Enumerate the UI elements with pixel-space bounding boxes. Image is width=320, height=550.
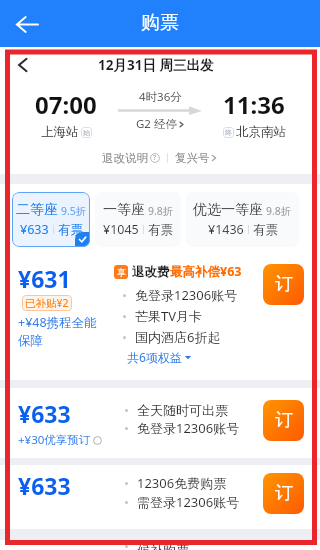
staticText: 国内酒店6折起 [135, 328, 221, 346]
staticText: 11:36 [223, 88, 285, 121]
staticText: ¥631 [18, 263, 71, 294]
staticText: 退改说明 [102, 151, 148, 165]
staticText: ¥633 [18, 542, 71, 550]
staticText: ¥1045 [103, 221, 139, 238]
staticText: 12月31日 周三出发 [98, 56, 214, 74]
staticText: 需登录12306账号 [137, 493, 240, 511]
staticText: 上海站 [41, 124, 79, 140]
staticText: +¥30优享预订 [18, 432, 91, 448]
staticText: 有票 [58, 222, 83, 238]
staticText: ¥633 [18, 398, 71, 429]
staticText: ? [153, 153, 157, 163]
button[interactable]: Previous day [8, 51, 36, 79]
staticText: G2 经停 [136, 116, 177, 132]
staticText: 享 [117, 267, 126, 278]
staticText: +¥48携程全能保障 [18, 314, 108, 349]
staticText: 优选一等座 [193, 201, 263, 219]
staticText: 最高补偿¥63 [170, 263, 242, 280]
staticText: 07:00 [35, 88, 97, 121]
staticText: 免登录12306账号 [137, 419, 240, 437]
staticText: 有票 [253, 222, 278, 238]
staticText: 免登录12306账号 [135, 286, 238, 304]
staticText: 订 [275, 409, 293, 432]
staticText: ¥1436 [208, 221, 244, 238]
staticText: 终 [225, 128, 232, 137]
staticText: 订 [275, 273, 293, 296]
staticText: 芒果TV月卡 [135, 307, 203, 325]
staticText: 9.8折 [266, 204, 292, 218]
staticText: 一等座 [103, 201, 145, 219]
staticText: 9.8折 [148, 204, 174, 218]
staticText: ¥633 [18, 470, 71, 501]
staticText: 复兴号 [175, 151, 210, 165]
button[interactable]: 一等座 [95, 192, 181, 247]
button[interactable]: 退改说明 [102, 151, 160, 165]
staticText: ¥633 [20, 221, 49, 238]
staticText: 二等座 [16, 201, 58, 219]
staticText: 共6项权益 [127, 349, 182, 365]
staticText: 订 [275, 482, 293, 505]
staticText: 购票 [141, 11, 179, 35]
staticText: 12306免费购票 [137, 474, 227, 492]
staticText: 有票 [148, 222, 173, 238]
button[interactable]: 优选一等座 [186, 192, 299, 247]
button[interactable]: 订 [263, 473, 304, 514]
staticText: 始 [83, 128, 90, 137]
button[interactable]: 复兴号 [175, 151, 218, 165]
staticText: 候补购票 [137, 542, 189, 550]
staticText: 已补贴¥2 [25, 296, 69, 310]
staticText: 4时36分 [139, 89, 182, 105]
button[interactable]: 共6项权益 [127, 349, 192, 365]
button[interactable]: Back [9, 6, 45, 42]
button[interactable]: G2 经停 [136, 116, 185, 132]
button[interactable]: 二等座 [12, 192, 90, 247]
staticText: 全天随时可出票 [137, 402, 228, 418]
button[interactable]: 订 [263, 264, 304, 305]
button[interactable]: 订 [263, 400, 304, 441]
staticText: 9.5折 [61, 204, 87, 218]
staticText: 北京南站 [236, 124, 286, 140]
staticText: 退改费 [132, 264, 170, 280]
